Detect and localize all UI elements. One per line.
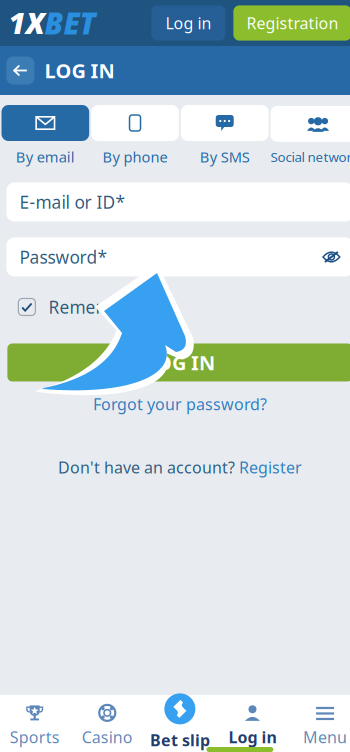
button[interactable]: Bet slip [144,696,216,751]
staticText: Menu [303,726,347,748]
button[interactable]: Log in [216,696,289,751]
button[interactable]: Sports [0,696,71,751]
button[interactable]: Back [6,56,34,84]
button[interactable]: Show password [322,250,340,264]
staticText: E-mail or ID* [19,190,125,213]
button[interactable]: Log in [151,5,225,41]
button[interactable]: LOG IN [7,343,350,381]
staticText: By email [16,147,75,166]
staticText: BET [44,3,95,42]
staticText: Remember me [48,295,170,318]
button[interactable]: Register [239,457,302,478]
staticText: LOG IN [145,349,215,376]
staticText: Sports [10,726,60,748]
staticText: Password* [19,245,107,268]
staticText: Don't have an account? [58,457,235,478]
button[interactable]: By phone [91,105,179,166]
staticText: LOG IN [44,57,114,84]
staticText: 1X [8,3,44,42]
staticText: Bet slip [150,729,210,751]
button[interactable]: Casino [71,696,144,751]
button[interactable]: Forgot your password? [93,393,267,415]
button[interactable]: Remember me [0,295,350,318]
staticText: Forgot your password? [93,393,267,415]
staticText: Registration [246,12,338,34]
staticText: By phone [102,147,167,166]
button[interactable]: Social networks [271,106,350,166]
staticText: Social networks [271,148,350,166]
button[interactable]: By SMS [181,105,269,166]
staticText: Register [239,457,302,478]
button[interactable]: By email [1,105,89,166]
staticText: Log in [165,12,211,34]
staticText: By SMS [200,147,250,166]
staticText: Casino [82,726,133,748]
staticText: Log in [228,726,276,748]
button[interactable]: Registration [233,5,350,41]
button[interactable]: Menu [289,696,350,751]
